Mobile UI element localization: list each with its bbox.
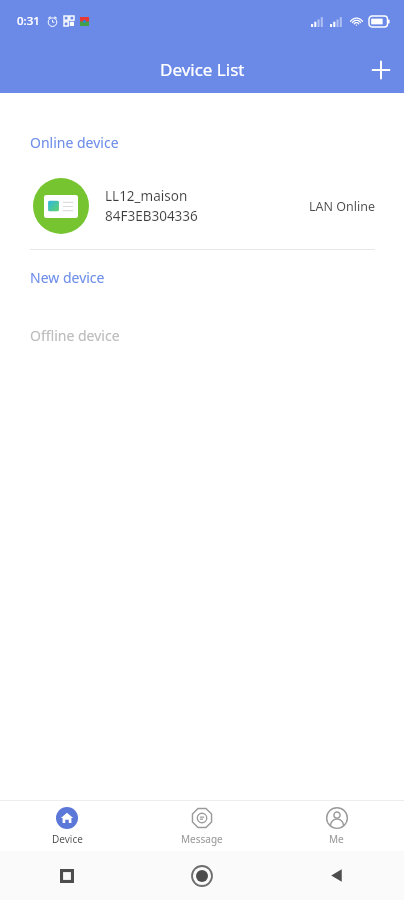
button[interactable]: Me xyxy=(269,801,404,851)
staticText: Device List xyxy=(160,58,245,81)
button[interactable]: Add device xyxy=(357,46,404,93)
staticText: New device xyxy=(30,268,105,287)
staticText: 84F3EB304336 xyxy=(105,207,198,225)
staticText: Message xyxy=(181,832,223,846)
staticText: Device xyxy=(52,832,83,846)
button[interactable]: LL12_maison xyxy=(0,175,404,237)
button[interactable]: Message xyxy=(134,801,269,851)
staticText: Offline device xyxy=(30,326,120,345)
staticText: LL12_maison xyxy=(105,187,188,205)
staticText: LAN Online xyxy=(309,198,376,215)
staticText: 0:31 xyxy=(17,13,40,29)
staticText: Online device xyxy=(30,133,119,152)
button[interactable]: Device xyxy=(0,801,134,851)
button[interactable]: Offline device xyxy=(0,324,404,347)
button[interactable]: New device xyxy=(0,266,404,289)
staticText: Me xyxy=(329,832,344,846)
